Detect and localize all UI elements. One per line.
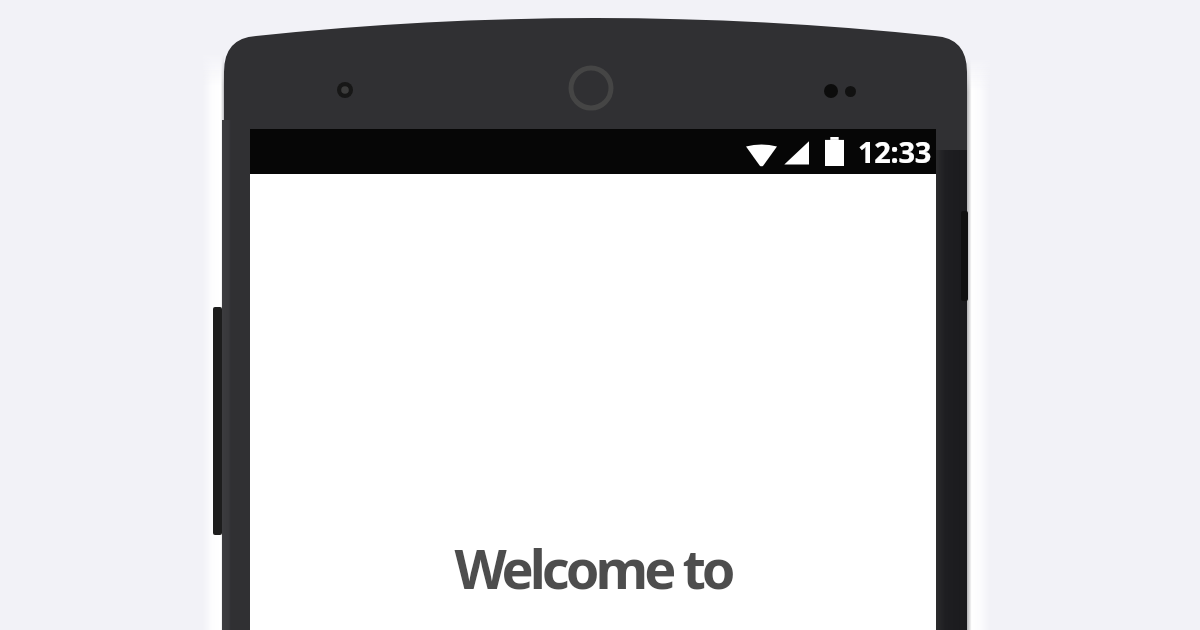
button[interactable]: Welcome to — [454, 531, 732, 605]
button[interactable]: Volume — [213, 307, 222, 535]
staticText: 12:33 — [858, 132, 932, 171]
button[interactable]: Power — [961, 211, 968, 301]
